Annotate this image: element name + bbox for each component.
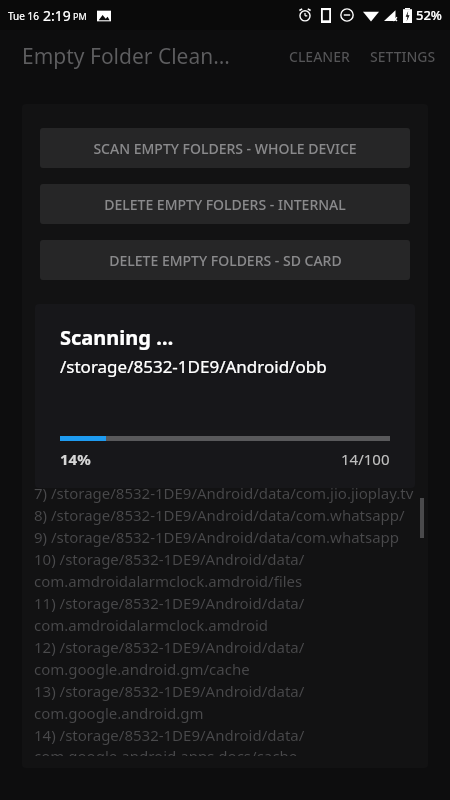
button[interactable]: DELETE EMPTY FOLDERS - INTERNAL	[40, 184, 410, 224]
staticText: com.google.android.gm	[34, 703, 204, 723]
staticText: Tue 16	[8, 9, 39, 23]
staticText: 7) /storage/8532-1DE9/Android/data/com.j…	[34, 483, 414, 503]
staticText: 11) /storage/8532-1DE9/Android/data/	[34, 593, 305, 613]
button[interactable]: SETTINGS	[360, 35, 450, 78]
staticText: 14/100	[341, 449, 390, 469]
staticText: com.amdroidalarmclock.amdroid	[34, 615, 269, 635]
staticText: 9) /storage/8532-1DE9/Android/data/com.w…	[34, 527, 400, 547]
staticText: /storage/8532-1DE9/Android/obb	[60, 355, 327, 378]
staticText: com.amdroidalarmclock.amdroid/files	[34, 571, 303, 591]
staticText: 8) /storage/8532-1DE9/Android/data/com.w…	[34, 505, 416, 525]
staticText: 10) /storage/8532-1DE9/Android/data/	[34, 549, 305, 569]
button[interactable]: CLEANER	[279, 35, 360, 78]
staticText: 13) /storage/8532-1DE9/Android/data/	[34, 681, 305, 701]
staticText: Scanning …	[60, 324, 174, 351]
staticText: SCAN EMPTY FOLDERS - WHOLE DEVICE	[93, 139, 357, 158]
staticText: 14%	[60, 449, 91, 469]
staticText: SETTINGS	[370, 47, 436, 66]
staticText: 14) /storage/8532-1DE9/Android/data/	[34, 725, 305, 745]
staticText: CLEANER	[289, 47, 350, 66]
staticText: DELETE EMPTY FOLDERS - INTERNAL	[104, 195, 346, 214]
staticText: com.google.android.apps.docs/cache	[34, 746, 298, 756]
staticText: com.google.android.gm/cache	[34, 659, 250, 679]
staticText: 52%	[416, 6, 442, 24]
staticText: 2:19	[43, 6, 71, 25]
staticText: DELETE EMPTY FOLDERS - SD CARD	[109, 251, 342, 270]
staticText: PM	[73, 10, 87, 22]
button[interactable]: DELETE EMPTY FOLDERS - SD CARD	[40, 240, 410, 280]
staticText: Empty Folder Clean…	[22, 42, 230, 71]
staticText: 12) /storage/8532-1DE9/Android/data/	[34, 637, 305, 657]
button[interactable]: SCAN EMPTY FOLDERS - WHOLE DEVICE	[40, 128, 410, 168]
